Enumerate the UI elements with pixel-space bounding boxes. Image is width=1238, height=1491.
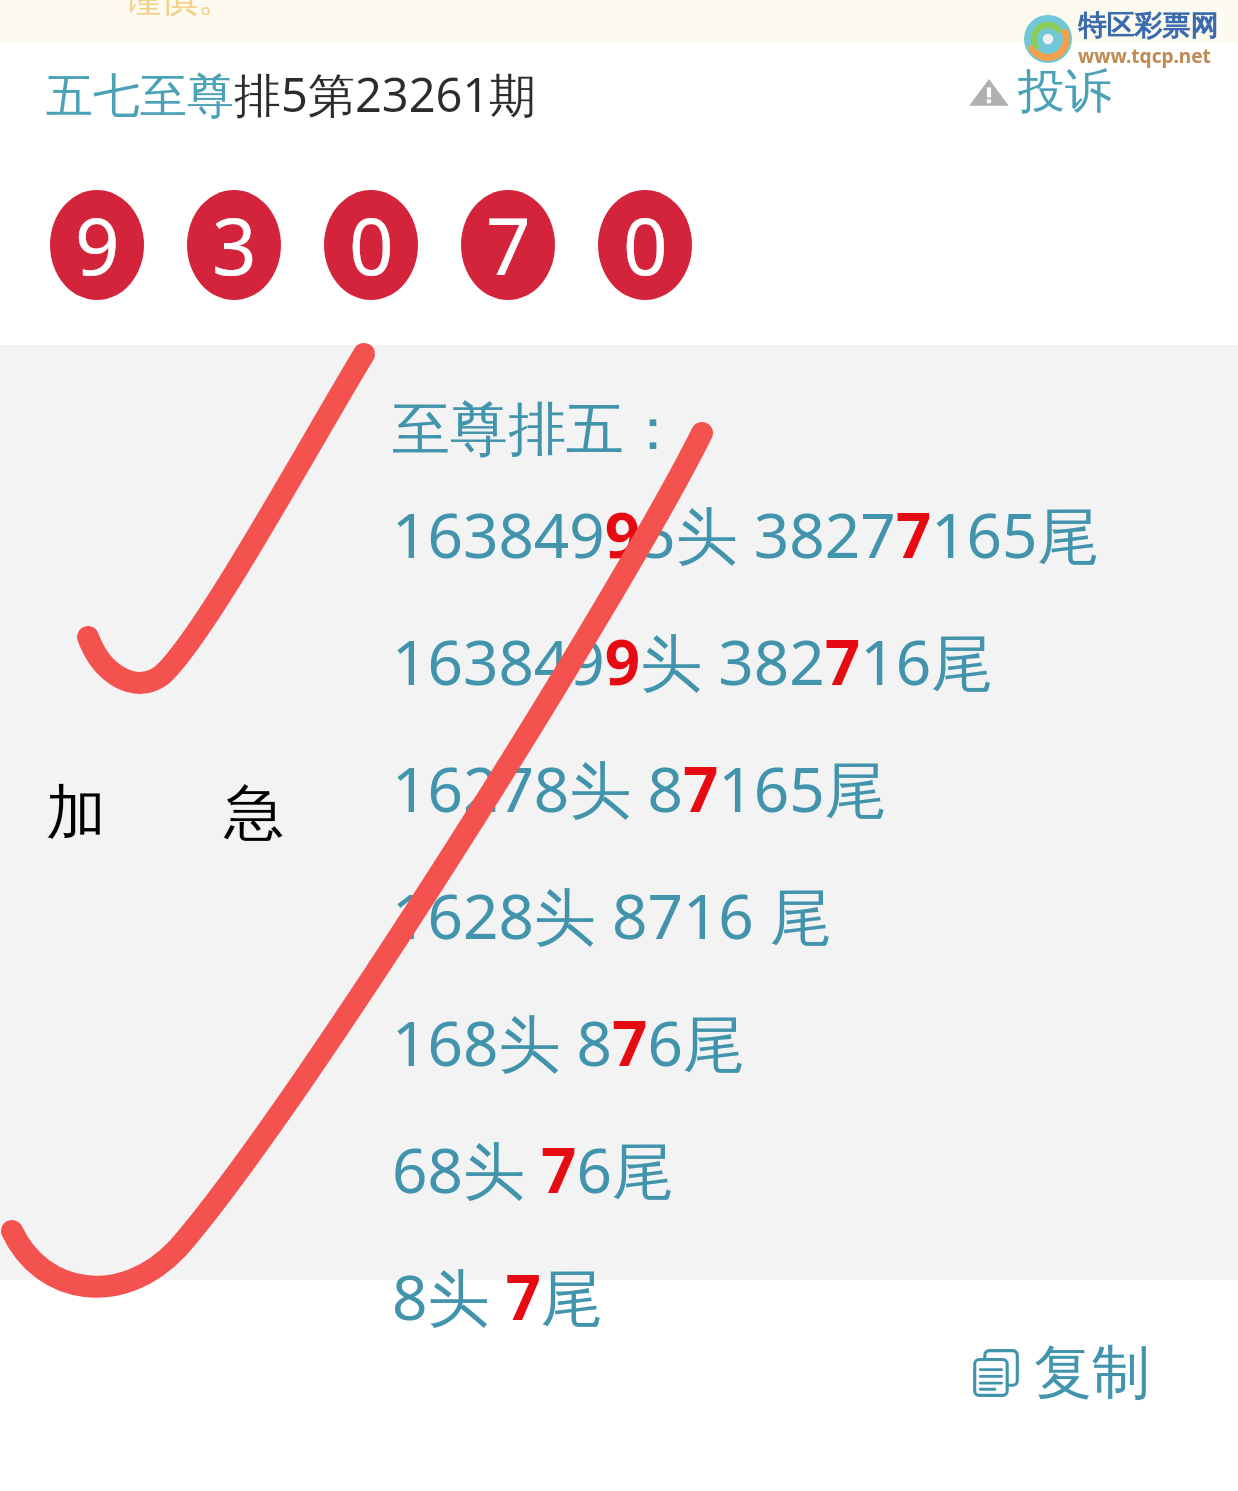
staticText: 7 bbox=[486, 192, 531, 298]
staticText: 特区彩票网 bbox=[1078, 8, 1218, 43]
staticText: 16278头 87165尾 bbox=[392, 746, 887, 831]
staticText: 1628头 8716 尾 bbox=[392, 873, 832, 958]
staticText: 复制 bbox=[1034, 1336, 1150, 1409]
staticText: 0 bbox=[623, 192, 668, 298]
button[interactable]: Copy bbox=[962, 1330, 1156, 1415]
staticText: 168头 876尾 bbox=[392, 1000, 745, 1085]
staticText: 至尊排五： bbox=[392, 393, 682, 466]
staticText: 16384995头 38277165尾 bbox=[392, 492, 1100, 577]
staticText: 急 bbox=[224, 775, 284, 851]
staticText: 1638499头 382716尾 bbox=[392, 619, 994, 704]
button[interactable]: Report bbox=[962, 58, 1116, 125]
staticText: 68头 76尾 bbox=[392, 1127, 674, 1212]
staticText: 9 bbox=[75, 192, 120, 298]
staticText: 8头 7尾 bbox=[392, 1254, 604, 1328]
staticText: 加 bbox=[46, 775, 106, 851]
staticText: www.tqcp.net bbox=[1078, 43, 1211, 69]
other: Report bbox=[966, 69, 1012, 115]
staticText: 3 bbox=[212, 192, 257, 298]
staticText: 五七至尊排5第23261期 bbox=[46, 62, 537, 126]
staticText: 0 bbox=[349, 192, 394, 298]
other: Copy bbox=[968, 1345, 1024, 1401]
staticText: 谨慎。 bbox=[126, 0, 234, 18]
staticText: 投诉 bbox=[1018, 62, 1112, 121]
